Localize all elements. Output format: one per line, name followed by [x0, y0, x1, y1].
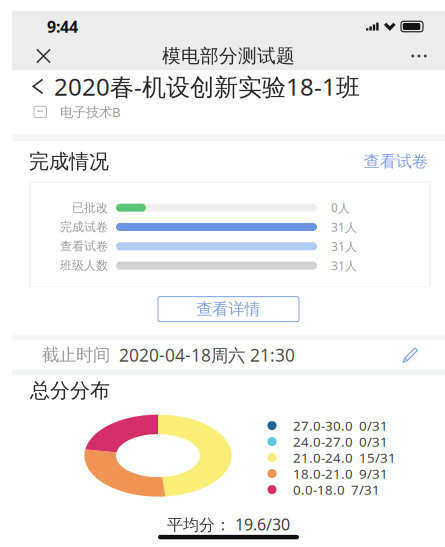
staticText: 31人: [331, 258, 357, 273]
staticText: 21.0-24.0 15/31: [293, 449, 396, 466]
staticText: 2020春-机设创新实验18-1班: [54, 71, 360, 102]
staticText: 查看试卷: [60, 239, 108, 254]
staticText: 9:44: [47, 16, 78, 37]
staticText: 27.0-30.0 0/31: [293, 417, 388, 434]
staticText: 模电部分测试题: [162, 44, 295, 67]
staticText: 0.0-18.0 7/31: [293, 481, 380, 498]
button[interactable]: 查看详情: [158, 297, 299, 322]
staticText: 已批改: [72, 200, 108, 215]
staticText: 31人: [331, 238, 357, 254]
staticText: 24.0-27.0 0/31: [293, 433, 388, 450]
staticText: 截止时间: [42, 344, 110, 366]
staticText: 班级人数: [60, 258, 108, 273]
staticText: 0人: [331, 200, 350, 216]
staticText: 18.0-21.0 9/31: [293, 465, 388, 482]
button[interactable]: 查看试卷: [364, 152, 428, 171]
staticText: 电子技术B: [60, 103, 121, 121]
staticText: 查看详情: [196, 299, 260, 319]
button[interactable]: 修改截止时间: [402, 347, 419, 364]
staticText: 完成试卷: [60, 220, 108, 234]
staticText: 查看试卷: [364, 152, 428, 171]
staticText: 总分分布: [30, 378, 110, 403]
staticText: 31人: [331, 219, 357, 235]
staticText: 平均分： 19.6/30: [167, 514, 290, 535]
staticText: 2020-04-18周六 21:30: [119, 344, 295, 367]
button[interactable]: 关闭: [36, 42, 82, 69]
staticText: 完成情况: [29, 149, 109, 174]
button[interactable]: 更多: [381, 42, 427, 69]
